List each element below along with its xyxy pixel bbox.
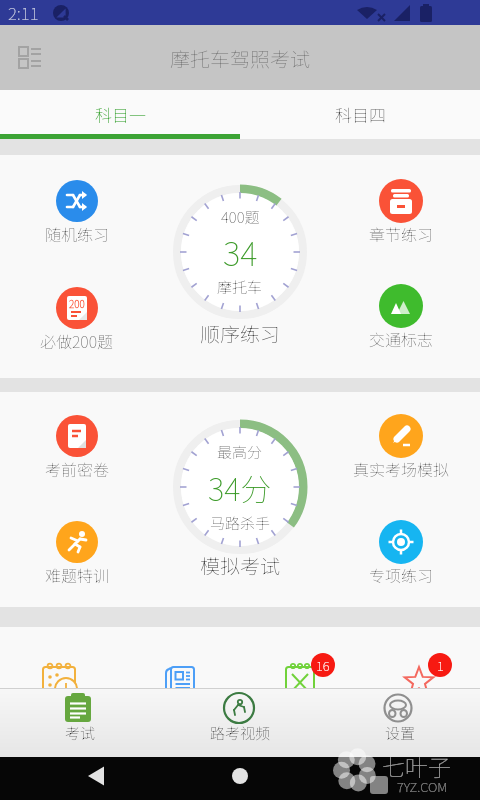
button[interactable] [160, 407, 320, 567]
staticText: 模拟考试 [200, 551, 280, 580]
staticText: 科目一 [95, 102, 146, 127]
staticText: 7YZ.COM [397, 777, 448, 796]
button[interactable]: 设置 [320, 689, 480, 757]
button[interactable] [20, 630, 100, 688]
button[interactable]: 考前密卷 [7, 410, 147, 484]
staticText: 必做200题 [40, 329, 114, 352]
button[interactable]: 专项练习 [331, 516, 471, 590]
button[interactable]: 科目四 [240, 90, 480, 139]
button[interactable]: 随机练习 [7, 175, 147, 249]
staticText: 16 [316, 656, 330, 675]
button[interactable]: 真实考场模拟 [331, 410, 471, 484]
staticText: 摩托车 [217, 276, 263, 298]
staticText: 考试 [65, 722, 96, 744]
button[interactable]: 难题特训 [7, 516, 147, 590]
staticText: 最高分 [217, 441, 263, 463]
staticText: 设置 [385, 722, 416, 744]
button[interactable]: 路考视频 [160, 689, 320, 757]
staticText: 七叶子 [382, 749, 451, 782]
staticText: 200 [69, 296, 85, 310]
button[interactable] [140, 630, 220, 688]
staticText: 专项练习 [369, 563, 434, 586]
button[interactable]: 章节练习 [331, 175, 471, 249]
staticText: 2:11 [8, 0, 39, 25]
staticText: 真实考场模拟 [353, 457, 450, 480]
button[interactable]: 交通标志 [331, 280, 471, 354]
button[interactable]: 考试 [0, 689, 160, 757]
staticText: 章节练习 [369, 222, 434, 245]
staticText: 路考视频 [210, 722, 271, 744]
button[interactable] [384, 630, 464, 688]
staticText: 马路杀手 [210, 512, 271, 534]
staticText: 400题 [221, 206, 260, 228]
staticText: 随机练习 [45, 222, 110, 245]
staticText: 考前密卷 [45, 457, 110, 480]
staticText: 交通标志 [369, 327, 434, 350]
staticText: 难题特训 [45, 563, 110, 586]
button[interactable] [262, 630, 342, 688]
staticText: 顺序练习 [200, 319, 280, 348]
button[interactable] [160, 172, 320, 332]
staticText: 34分 [208, 465, 272, 510]
staticText: 科目四 [335, 102, 386, 127]
staticText: 1 [437, 656, 444, 675]
button[interactable]: 必做200题 [7, 282, 147, 356]
staticText: 34 [223, 228, 258, 276]
staticText: 摩托车驾照考试 [170, 44, 310, 73]
button[interactable]: 科目一 [0, 90, 240, 139]
